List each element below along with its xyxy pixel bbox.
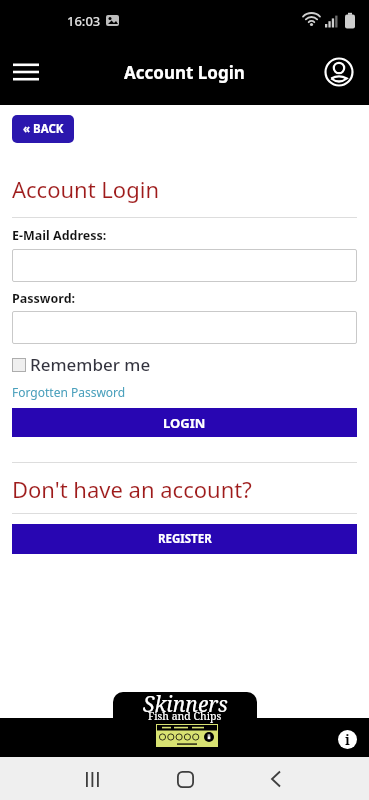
button[interactable]: REGISTER: [12, 524, 357, 554]
staticText: Fish and Chips: [148, 709, 222, 723]
staticText: Account Login: [124, 61, 245, 84]
staticText: LOGIN: [163, 414, 206, 432]
staticText: « BACK: [23, 121, 64, 137]
staticText: E-Mail Address:: [12, 227, 107, 244]
button[interactable]: Forgotten Password: [12, 384, 126, 400]
button[interactable]: [257, 760, 295, 798]
button[interactable]: LOGIN: [12, 408, 357, 437]
staticText: REGISTER: [158, 531, 212, 547]
staticText: Don't have an account?: [12, 474, 252, 504]
button[interactable]: [12, 311, 357, 344]
button[interactable]: [321, 54, 357, 90]
button[interactable]: « BACK: [12, 115, 74, 143]
button[interactable]: [12, 249, 357, 282]
staticText: 16:03: [67, 12, 101, 30]
button[interactable]: [6, 52, 46, 92]
button[interactable]: i: [338, 730, 357, 749]
staticText: i: [345, 730, 350, 749]
staticText: Skinners: [143, 692, 228, 719]
staticText: Account Login: [12, 174, 159, 204]
button[interactable]: [166, 760, 204, 798]
button[interactable]: [74, 760, 112, 798]
button[interactable]: Remember me: [12, 353, 151, 376]
staticText: Remember me: [30, 353, 151, 376]
staticText: Password:: [12, 290, 76, 307]
